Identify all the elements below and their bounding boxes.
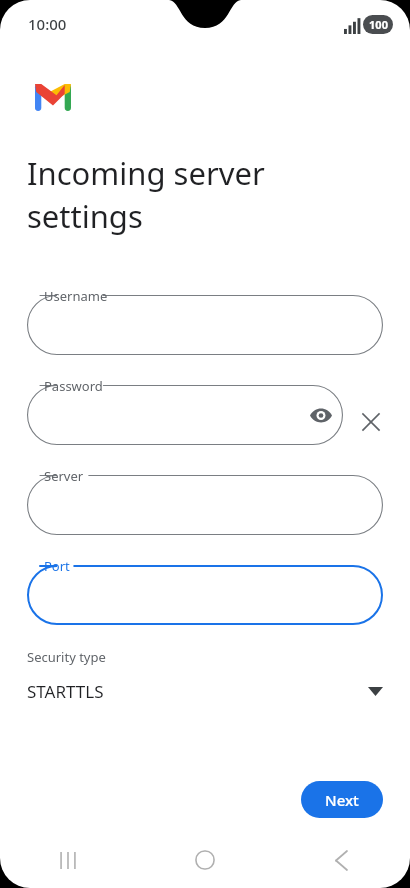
button[interactable]: Show password (307, 401, 335, 429)
staticText: Server (44, 467, 84, 485)
staticText: 10:00 (28, 14, 67, 34)
staticText: Port (44, 557, 70, 575)
button[interactable]: Clear password (357, 408, 385, 436)
staticText: Password (44, 377, 103, 395)
button[interactable]: Username (27, 295, 383, 355)
button[interactable]: Recents (0, 832, 136, 888)
button[interactable]: Home (136, 832, 273, 888)
staticText: STARTTLS (27, 680, 104, 703)
staticText: Next (325, 790, 359, 810)
staticText: 100 (369, 17, 388, 32)
staticText: Incoming server settings (27, 152, 367, 237)
staticText: Security type (27, 648, 106, 666)
button[interactable]: Next (301, 781, 383, 818)
button[interactable]: Security type (27, 648, 383, 703)
button[interactable]: Server (27, 475, 383, 535)
button[interactable]: Back (273, 832, 410, 888)
staticText: Username (44, 287, 108, 305)
button[interactable]: Password (27, 385, 343, 445)
button[interactable]: Port (27, 565, 383, 625)
